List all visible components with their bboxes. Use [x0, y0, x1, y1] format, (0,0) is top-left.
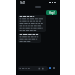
button[interactable]: Message from contact — [18, 33, 41, 43]
button[interactable]: Send — [49, 67, 51, 69]
button[interactable]: Voice message — [53, 67, 55, 69]
button[interactable]: Message from contact — [18, 15, 46, 32]
staticText: 9:41 — [20, 1, 26, 5]
button[interactable]: Today — [35, 6, 41, 8]
button[interactable]: Hey! — [46, 10, 57, 15]
button[interactable]: Message field — [18, 66, 48, 71]
staticText: Hey! — [49, 11, 55, 15]
